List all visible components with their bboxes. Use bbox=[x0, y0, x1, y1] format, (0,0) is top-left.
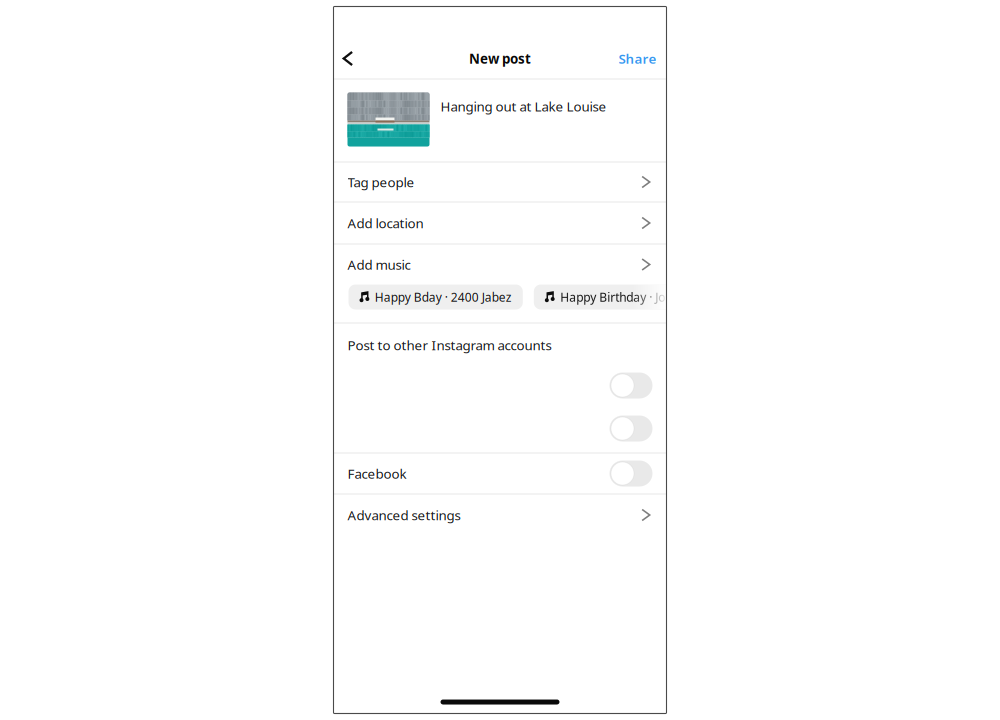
staticText: Tag people bbox=[347, 173, 414, 191]
button[interactable]: Add music bbox=[333, 244, 666, 284]
button[interactable]: Post to linked account bbox=[333, 404, 666, 452]
staticText: Share bbox=[618, 50, 656, 67]
button[interactable]: Happy Birthday · John bbox=[534, 284, 690, 309]
staticText: Add location bbox=[347, 214, 423, 232]
staticText: Happy Birthday · John bbox=[560, 289, 679, 305]
staticText: Facebook bbox=[347, 465, 406, 482]
button[interactable]: Happy Bday · 2400 Jabez bbox=[348, 284, 523, 309]
button[interactable]: Add location bbox=[333, 202, 666, 243]
button[interactable]: Facebook bbox=[333, 453, 666, 493]
staticText: Advanced settings bbox=[347, 506, 460, 524]
button[interactable]: Back bbox=[342, 41, 369, 75]
staticText: New post bbox=[469, 50, 531, 67]
button[interactable]: Share bbox=[618, 41, 656, 75]
staticText: Happy Bday · 2400 Jabez bbox=[375, 289, 512, 305]
button[interactable]: Post to linked account bbox=[333, 366, 666, 404]
staticText: Post to other Instagram accounts bbox=[347, 336, 551, 354]
button[interactable]: Advanced settings bbox=[333, 494, 666, 535]
staticText: Add music bbox=[347, 256, 410, 273]
button[interactable]: Tag people bbox=[333, 162, 666, 201]
staticText: Hanging out at Lake Louise bbox=[440, 97, 606, 115]
